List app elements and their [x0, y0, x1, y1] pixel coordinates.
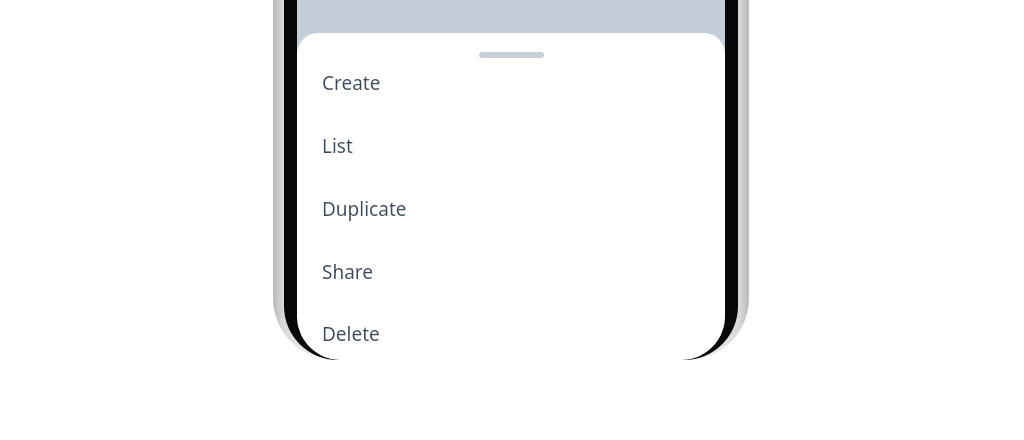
staticText: Share [322, 259, 374, 285]
staticText: Delete [322, 321, 380, 347]
staticText: Duplicate [322, 196, 407, 222]
button[interactable]: Share [297, 244, 725, 300]
staticText: List [322, 133, 353, 159]
button[interactable]: Delete [297, 306, 725, 360]
staticText: Create [322, 70, 381, 96]
button[interactable]: Duplicate [297, 181, 725, 237]
button[interactable]: List [297, 118, 725, 174]
button[interactable]: Create [297, 55, 725, 111]
